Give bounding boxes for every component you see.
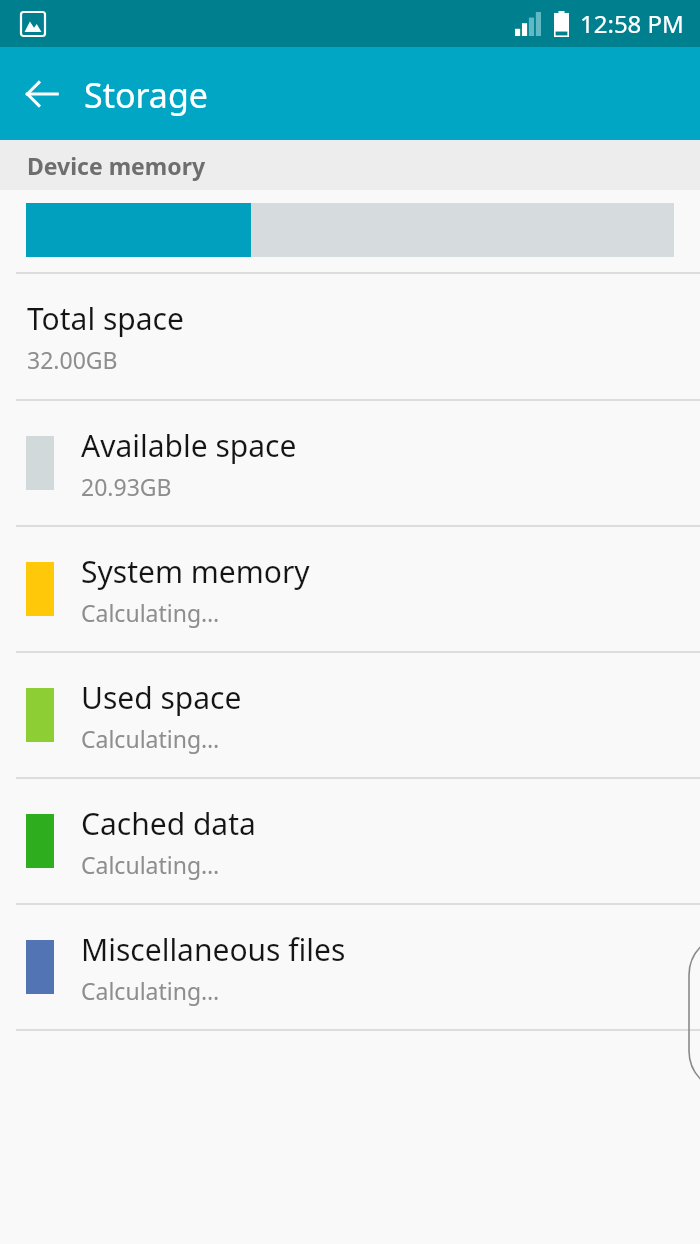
button[interactable]: System memory	[0, 527, 700, 651]
staticText: Miscellaneous files	[81, 929, 346, 970]
staticText: Calculating…	[81, 723, 220, 754]
staticText: Device memory	[27, 150, 206, 181]
staticText: Used space	[81, 677, 242, 718]
button[interactable]: Cached data	[0, 779, 700, 903]
staticText: Calculating…	[81, 849, 220, 880]
staticText: 20.93GB	[81, 471, 172, 502]
staticText: Available space	[81, 425, 297, 466]
button[interactable]: Used space	[0, 653, 700, 777]
button[interactable]: Miscellaneous files	[0, 905, 700, 1029]
staticText: Cached data	[81, 803, 256, 844]
button[interactable]: Navigate up	[10, 62, 74, 126]
staticText: 12:58 PM	[580, 7, 684, 40]
button[interactable]: Total space	[0, 274, 700, 399]
staticText: Total space	[27, 298, 184, 339]
staticText: 32.00GB	[27, 344, 118, 375]
staticText: Calculating…	[81, 975, 220, 1006]
button[interactable]: Available space	[0, 401, 700, 525]
staticText: Calculating…	[81, 597, 220, 628]
staticText: Storage	[84, 72, 209, 118]
staticText: System memory	[81, 551, 310, 592]
